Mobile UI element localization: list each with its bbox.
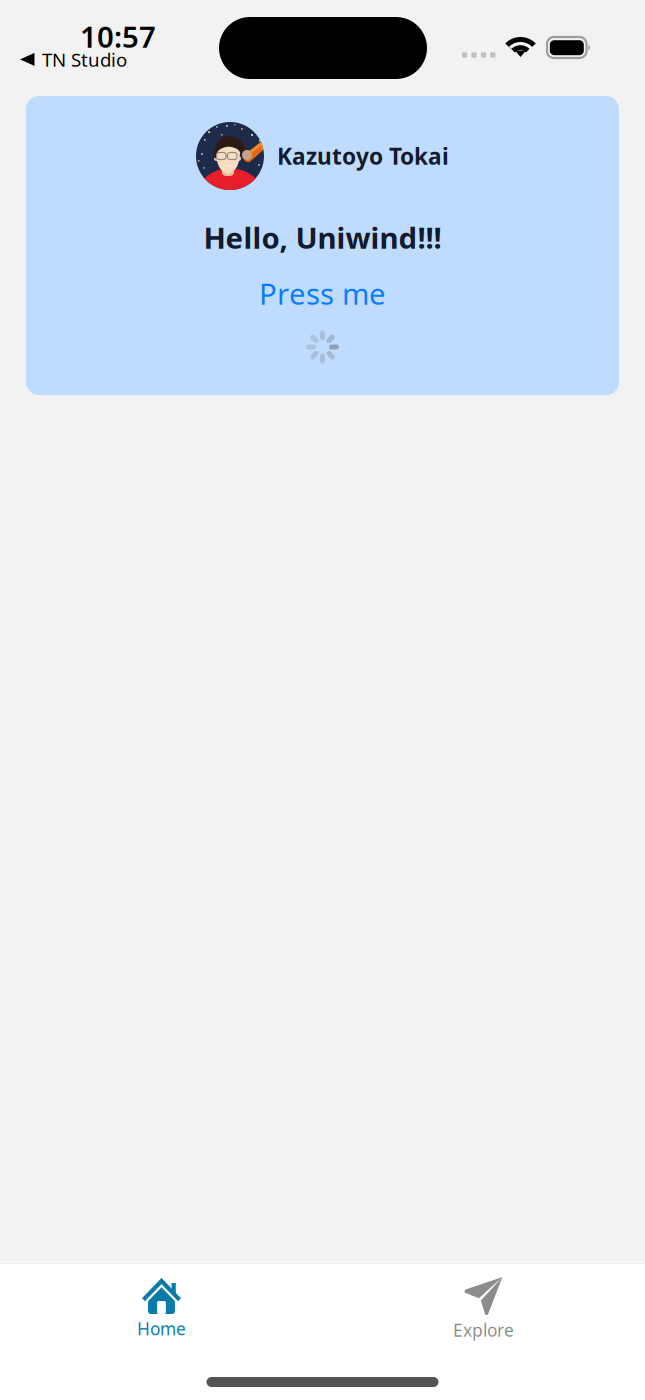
button[interactable]: TN Studio — [20, 47, 127, 72]
staticText: 10:57 — [80, 17, 156, 56]
staticText: Home — [137, 1317, 186, 1340]
staticText: Press me — [259, 274, 386, 313]
staticText: Hello, Uniwind!!! — [203, 218, 441, 257]
button[interactable]: Explore — [322, 1273, 644, 1345]
staticText: TN Studio — [42, 47, 127, 72]
button[interactable]: Press me — [253, 270, 392, 317]
staticText: Kazutoyo Tokai — [277, 141, 449, 171]
button[interactable]: Home — [0, 1273, 322, 1345]
staticText: Explore — [453, 1318, 514, 1341]
